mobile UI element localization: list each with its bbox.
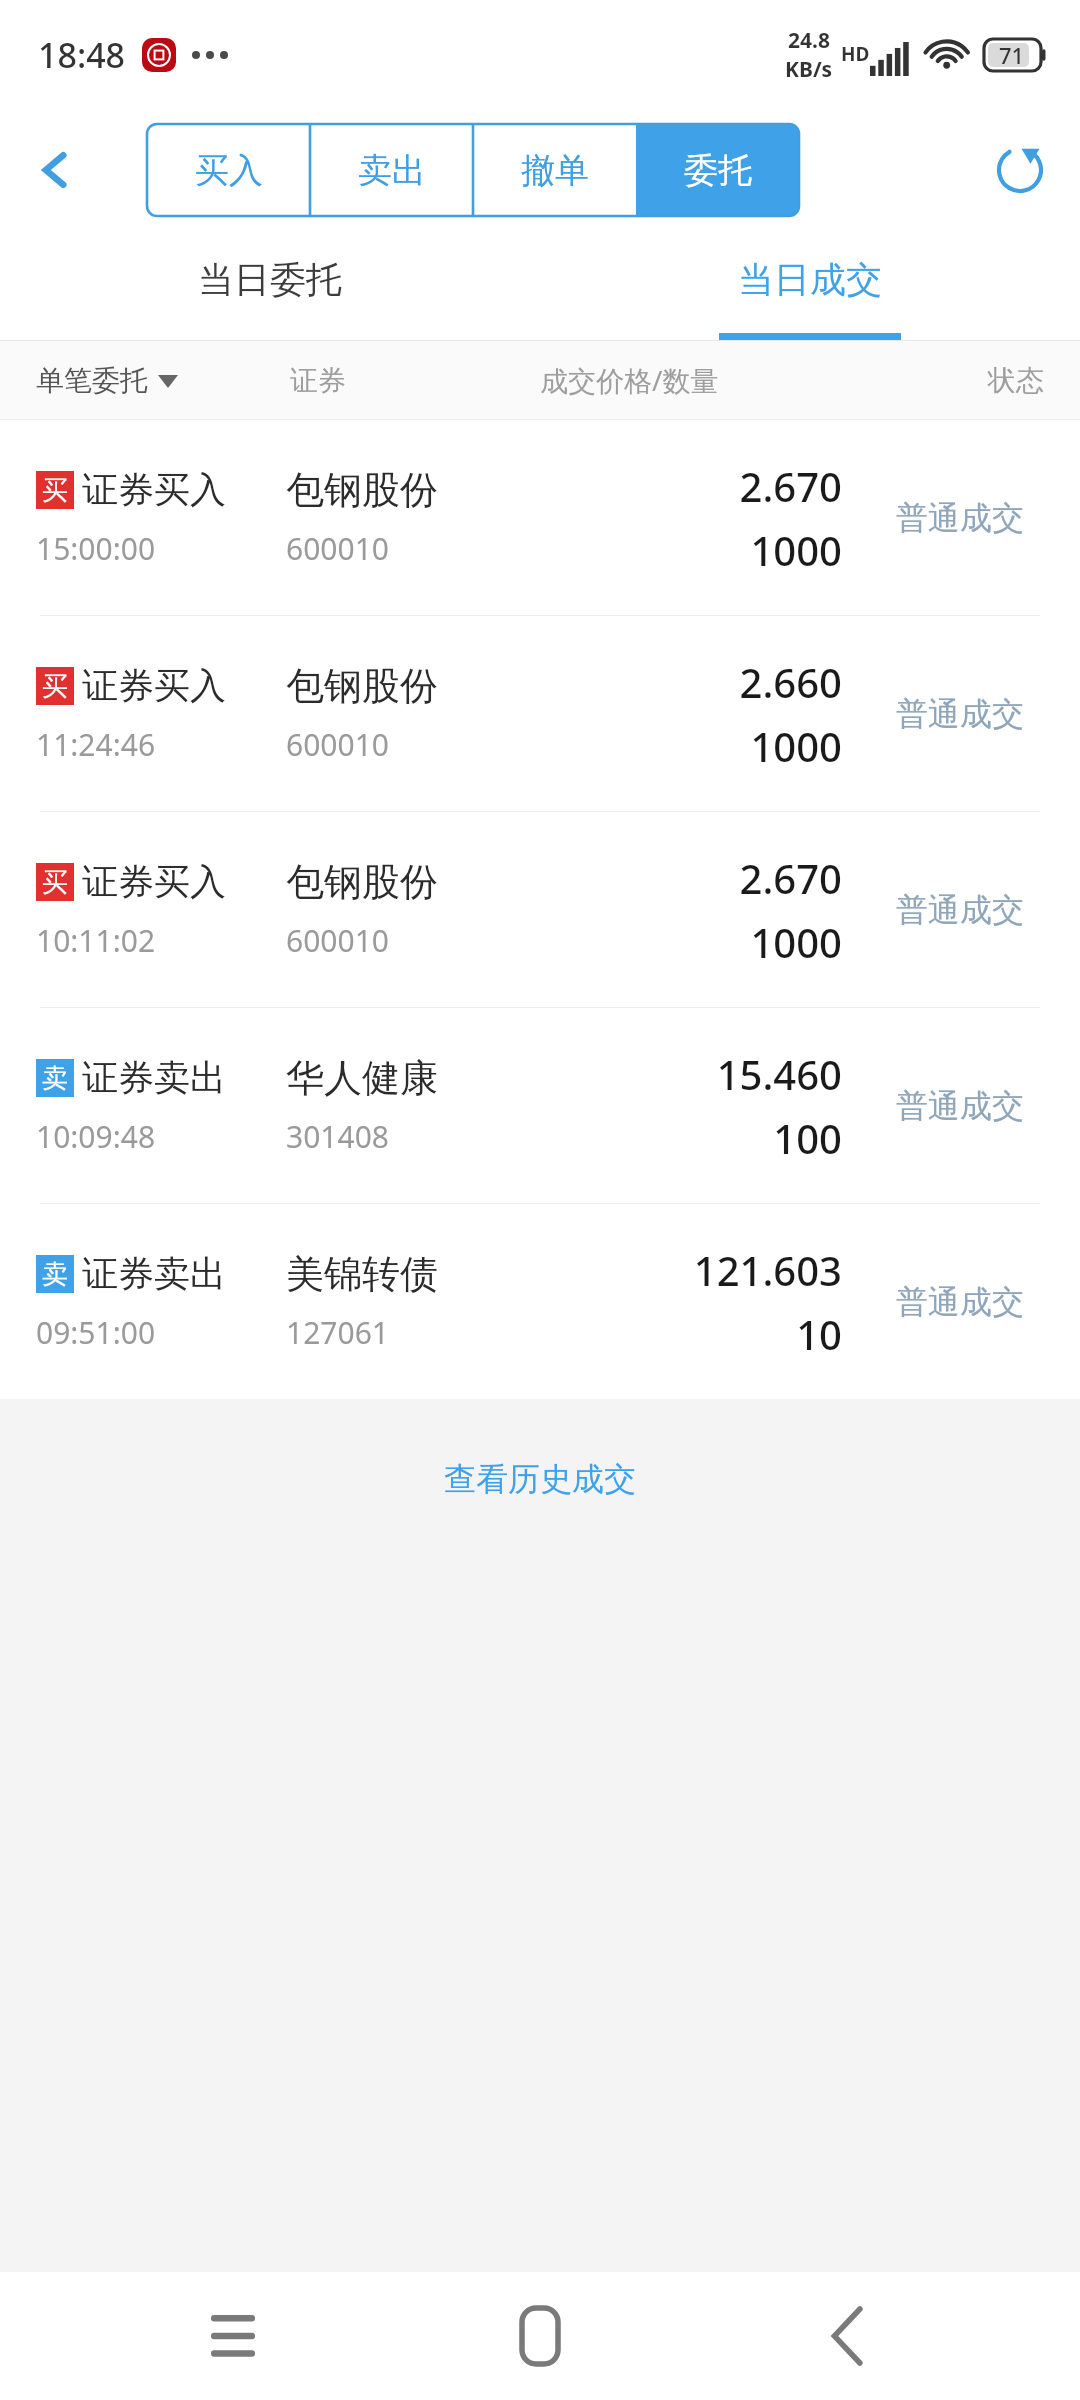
staticText: 2.670 [739, 459, 842, 513]
staticText: 买 [42, 474, 68, 507]
staticText: 71 [999, 40, 1025, 70]
staticText: 买 [42, 866, 68, 899]
button[interactable]: 买 [0, 812, 1080, 1007]
button[interactable]: 当日委托 [0, 230, 540, 340]
button[interactable]: 买入 [147, 124, 310, 216]
button[interactable]: 卖出 [310, 124, 473, 216]
staticText: 委托 [684, 149, 752, 192]
staticText: 证券买入 [82, 467, 226, 512]
staticText: 普通成交 [896, 890, 1024, 930]
button[interactable]: 卖 [0, 1008, 1080, 1203]
button[interactable]: Recent apps [158, 2272, 308, 2400]
staticText: 查看历史成交 [444, 1459, 636, 1499]
button[interactable]: Back [773, 2272, 923, 2400]
button[interactable]: 查看历史成交 [0, 1399, 1080, 1559]
staticText: 10:09:48 [36, 1116, 156, 1157]
staticText: 卖出 [358, 149, 426, 192]
staticText: 卖 [42, 1258, 68, 1291]
staticText: 证券 [290, 363, 540, 398]
staticText: 当日成交 [738, 257, 882, 302]
staticText: 100 [773, 1111, 842, 1165]
staticText: 包钢股份 [286, 466, 438, 514]
staticText: 1000 [750, 523, 842, 577]
staticText: 华人健康 [286, 1054, 438, 1102]
staticText: 买入 [195, 149, 263, 192]
staticText: 301408 [286, 1116, 389, 1157]
staticText: 09:51:00 [36, 1312, 156, 1353]
button[interactable]: 当日成交 [540, 230, 1080, 340]
staticText: 600010 [286, 528, 389, 569]
button[interactable]: 撤单 [473, 124, 636, 216]
staticText: 1000 [750, 719, 842, 773]
staticText: 2.660 [739, 655, 842, 709]
staticText: 普通成交 [896, 1282, 1024, 1322]
staticText: 证券买入 [82, 859, 226, 904]
button[interactable]: 卖 [0, 1204, 1080, 1399]
staticText: 121.603 [693, 1243, 842, 1297]
staticText: 美锦转债 [286, 1250, 438, 1298]
button[interactable]: 买 [0, 616, 1080, 811]
button[interactable]: Back [0, 110, 110, 230]
staticText: 15.460 [716, 1047, 842, 1101]
staticText: 证券卖出 [82, 1251, 226, 1296]
staticText: 包钢股份 [286, 662, 438, 710]
staticText: 状态 [924, 363, 1044, 398]
staticText: 普通成交 [896, 694, 1024, 734]
staticText: 单笔委托 [36, 363, 148, 398]
staticText: 600010 [286, 724, 389, 765]
staticText: 18:48 [38, 32, 126, 78]
staticText: 当日委托 [198, 257, 342, 302]
button[interactable]: 委托 [636, 124, 799, 216]
staticText: 普通成交 [896, 498, 1024, 538]
staticText: 成交价格/数量 [540, 361, 924, 399]
button[interactable]: 单笔委托 [36, 363, 290, 398]
staticText: 2.670 [739, 851, 842, 905]
staticText: HD [841, 41, 870, 67]
staticText: 普通成交 [896, 1086, 1024, 1126]
staticText: 证券买入 [82, 663, 226, 708]
button[interactable]: Home [465, 2272, 615, 2400]
staticText: KB/s [785, 55, 833, 84]
staticText: 卖 [42, 1062, 68, 1095]
staticText: 11:24:46 [36, 724, 156, 765]
staticText: 买 [42, 670, 68, 703]
button[interactable]: Refresh [960, 110, 1080, 230]
staticText: 证券卖出 [82, 1055, 226, 1100]
staticText: 撤单 [521, 149, 589, 192]
staticText: 10:11:02 [36, 920, 156, 961]
staticText: 127061 [286, 1312, 389, 1353]
staticText: 600010 [286, 920, 389, 961]
staticText: 1000 [750, 915, 842, 969]
staticText: 包钢股份 [286, 858, 438, 906]
button[interactable]: 买 [0, 420, 1080, 615]
staticText: 15:00:00 [36, 528, 156, 569]
staticText: 24.8 [788, 26, 830, 55]
staticText: 10 [796, 1307, 842, 1361]
